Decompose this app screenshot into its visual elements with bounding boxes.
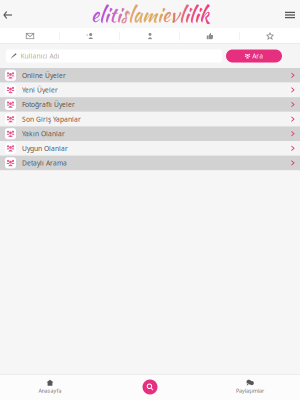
staticText: Uygun Olanlar (22, 144, 68, 153)
staticText: Yeni Üyeler (22, 85, 58, 94)
button[interactable]: Likes (180, 28, 240, 44)
button[interactable]: Anasayfa (0, 374, 100, 400)
staticText: Fotoğraflı Üyeler (22, 100, 75, 109)
button[interactable]: Profile (120, 28, 180, 44)
button[interactable]: Favorites (240, 28, 300, 44)
staticText: Detaylı Arama (22, 158, 67, 167)
staticText: Son Giriş Yapanlar (22, 115, 81, 124)
staticText: Kullanıcı Adı (21, 52, 60, 60)
button[interactable]: Menu (280, 4, 300, 26)
staticText: Paylaşımlar (236, 387, 264, 394)
button[interactable]: Online Üyeler (0, 68, 300, 83)
button[interactable]: Messages (0, 28, 60, 44)
button[interactable]: Uygun Olanlar (0, 141, 300, 156)
button[interactable]: Paylaşımlar (200, 374, 300, 400)
staticText: Anasayfa (38, 387, 61, 394)
button[interactable]: Yeni Üyeler (0, 83, 300, 97)
button[interactable]: Kullanıcı Adı (6, 49, 222, 62)
staticText: Online Üyeler (22, 71, 66, 80)
button[interactable]: Yakın Olanlar (0, 126, 300, 141)
button[interactable]: Son Giriş Yapanlar (0, 112, 300, 126)
button[interactable]: Search (100, 374, 200, 400)
staticText: Ara (252, 52, 263, 60)
button[interactable]: Detaylı Arama (0, 156, 300, 170)
button[interactable]: Fotoğraflı Üyeler (0, 97, 300, 112)
staticText: elitislamievlilik (91, 0, 209, 29)
staticText: Yakın Olanlar (22, 129, 65, 138)
button[interactable]: Back (0, 4, 16, 26)
button[interactable]: Ara (226, 49, 282, 62)
button[interactable]: Requests (60, 28, 120, 44)
